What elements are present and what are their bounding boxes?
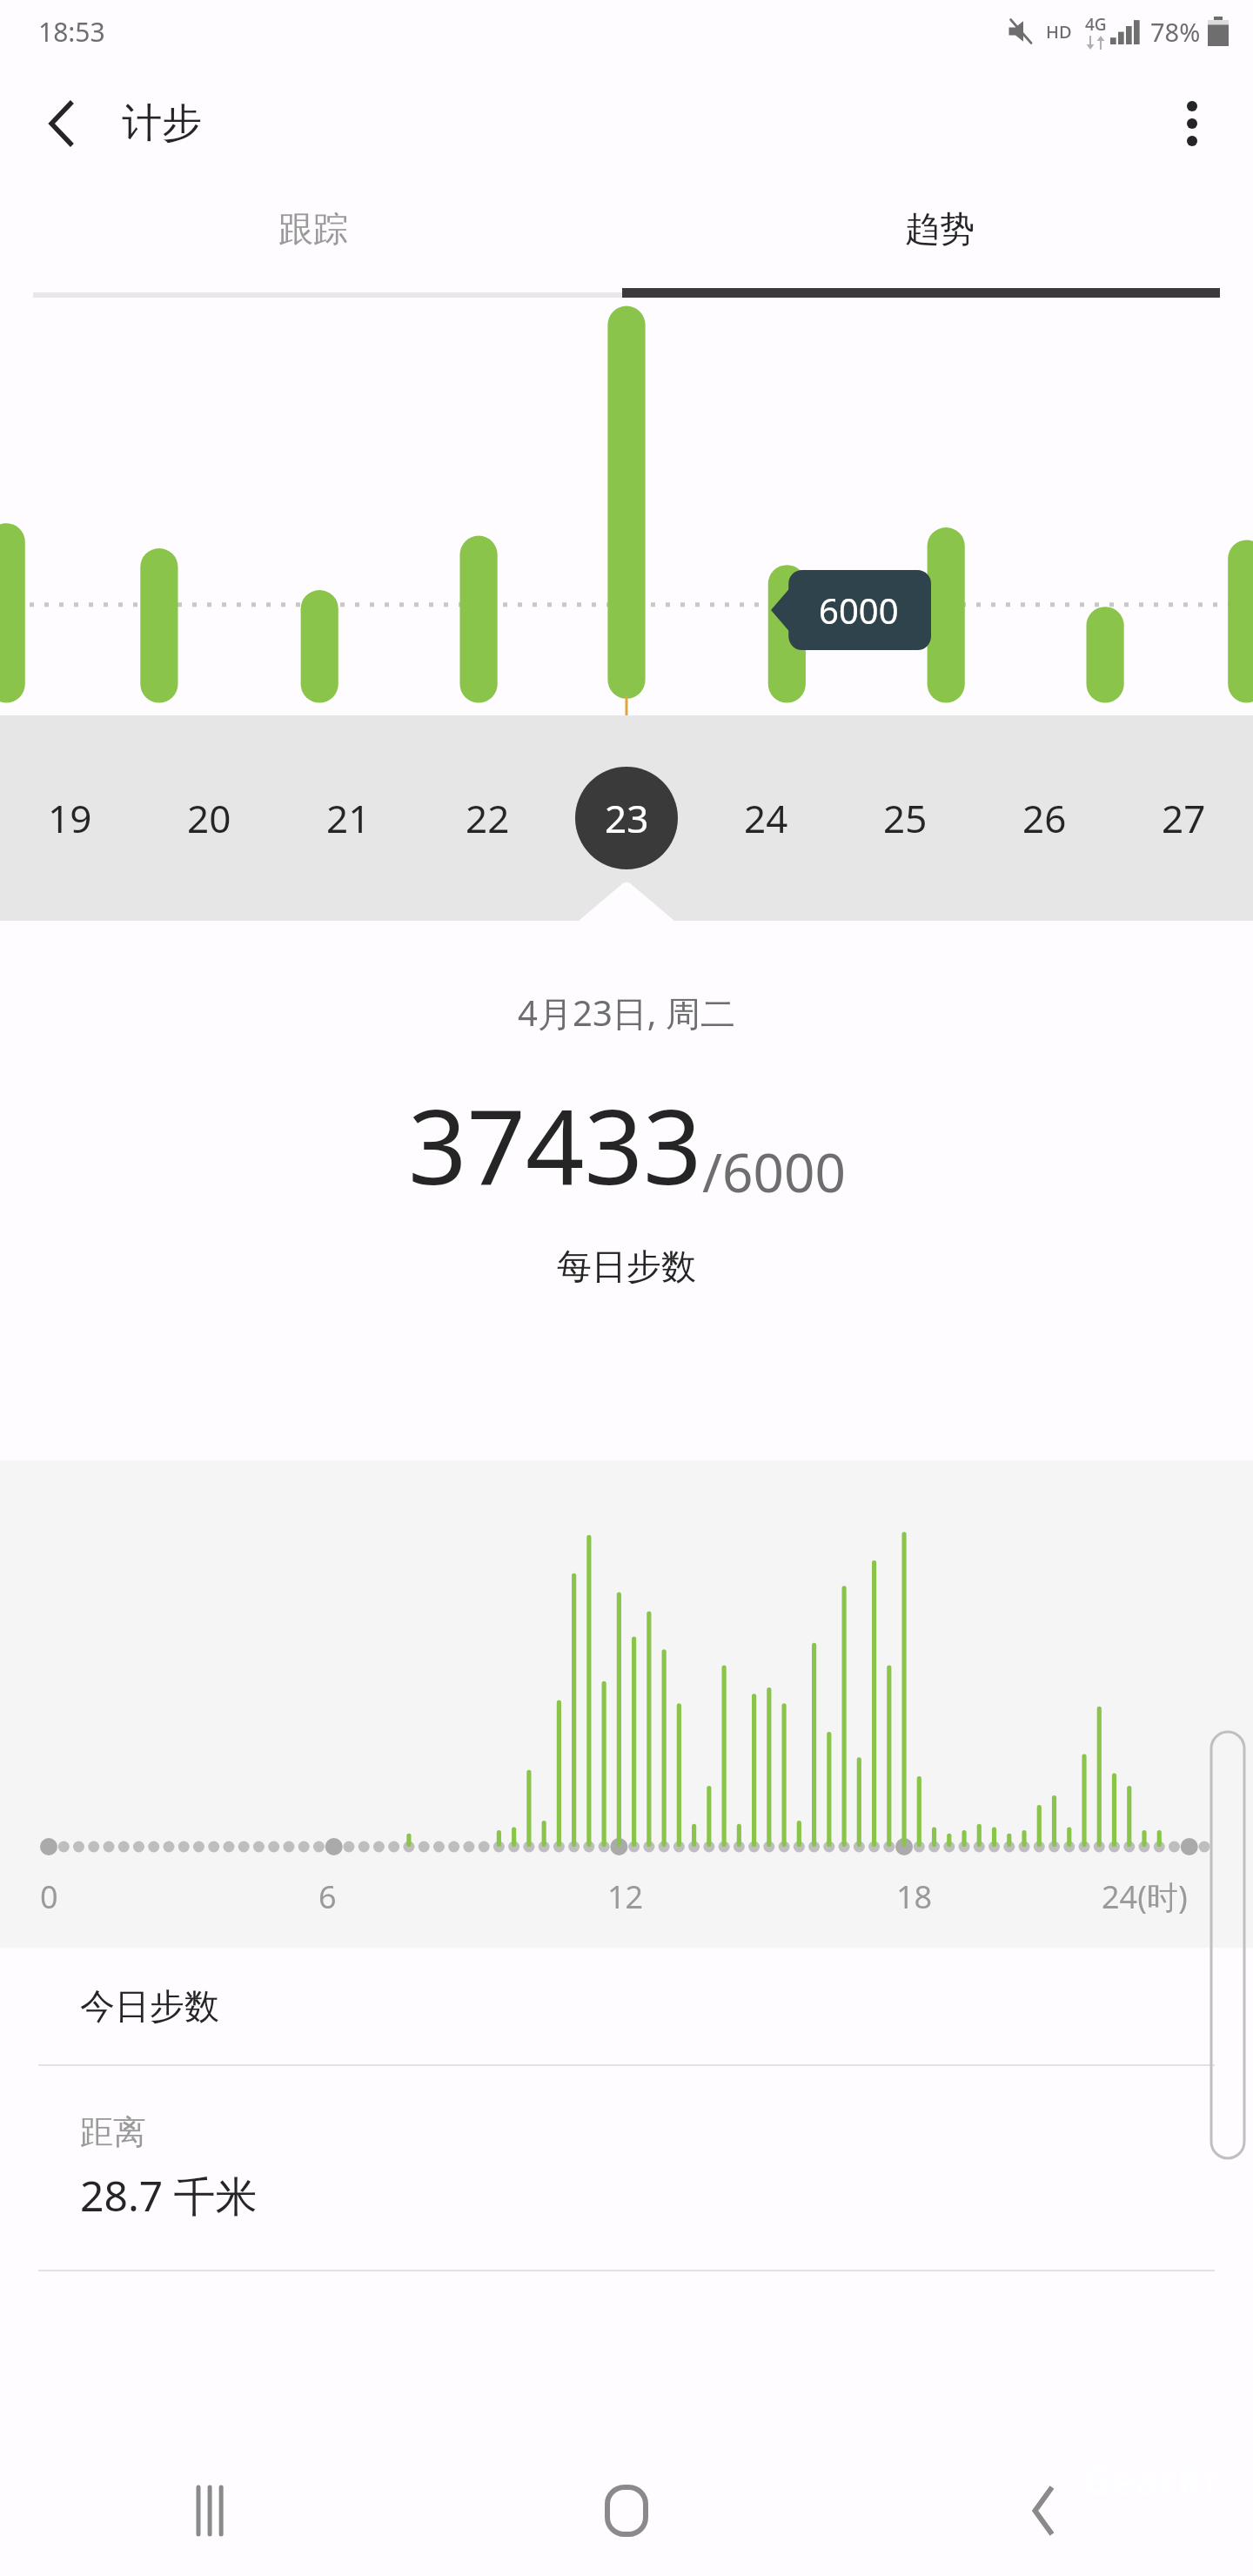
button[interactable]: 27 <box>1114 715 1253 921</box>
button[interactable]: 22 <box>418 715 557 921</box>
button[interactable]: 24 <box>696 715 835 921</box>
staticText: 12 <box>607 1875 644 1918</box>
staticText: HD <box>1046 20 1072 44</box>
button[interactable]: 今日步数 <box>0 1948 1253 2064</box>
button[interactable]: 20 <box>139 715 278 921</box>
button[interactable]: 趋势 <box>626 184 1253 298</box>
staticText: 6 <box>318 1875 337 1918</box>
staticText: 26 <box>1022 792 1067 844</box>
staticText: 趋势 <box>905 207 975 251</box>
button[interactable]: Home <box>418 2445 835 2576</box>
button[interactable]: 23 <box>557 715 696 921</box>
staticText: 37433 <box>408 1075 702 1215</box>
button[interactable]: 19 <box>0 715 139 921</box>
button[interactable]: Back <box>21 82 104 165</box>
button[interactable]: 26 <box>975 715 1114 921</box>
staticText: 21 <box>326 792 371 844</box>
staticText: 6000 <box>819 587 899 634</box>
staticText: 23 <box>605 792 649 844</box>
staticText: 19 <box>48 792 92 844</box>
staticText: 22 <box>466 792 510 844</box>
staticText: 计步 <box>122 98 202 149</box>
button[interactable]: 跟踪 <box>0 184 626 298</box>
staticText: /6000 <box>702 1135 846 1208</box>
staticText: 25 <box>883 792 928 844</box>
button[interactable]: Back <box>835 2445 1253 2576</box>
staticText: 20 <box>187 792 231 844</box>
staticText: 4G <box>1085 13 1107 36</box>
button[interactable]: 距离 <box>0 2066 1253 2224</box>
button[interactable]: 21 <box>278 715 418 921</box>
staticText: 28.7 千米 <box>80 2167 258 2224</box>
staticText: 78% <box>1150 15 1201 49</box>
staticText: 每日步数 <box>557 1244 696 1288</box>
button[interactable]: More options <box>1150 82 1234 165</box>
staticText: 18 <box>896 1875 933 1918</box>
staticText: 4月23日, 周二 <box>518 989 735 1036</box>
staticText: 0 <box>40 1875 58 1918</box>
staticText: 27 <box>1162 792 1206 844</box>
staticText: 18:53 <box>38 14 105 50</box>
button[interactable]: 25 <box>835 715 975 921</box>
staticText: 24 <box>744 792 788 844</box>
staticText: 跟踪 <box>278 207 348 251</box>
staticText: 今日步数 <box>80 1984 219 2028</box>
staticText: 距离 <box>80 2111 146 2153</box>
staticText: 24(时) <box>1102 1875 1188 1918</box>
button[interactable]: Recents <box>0 2445 418 2576</box>
